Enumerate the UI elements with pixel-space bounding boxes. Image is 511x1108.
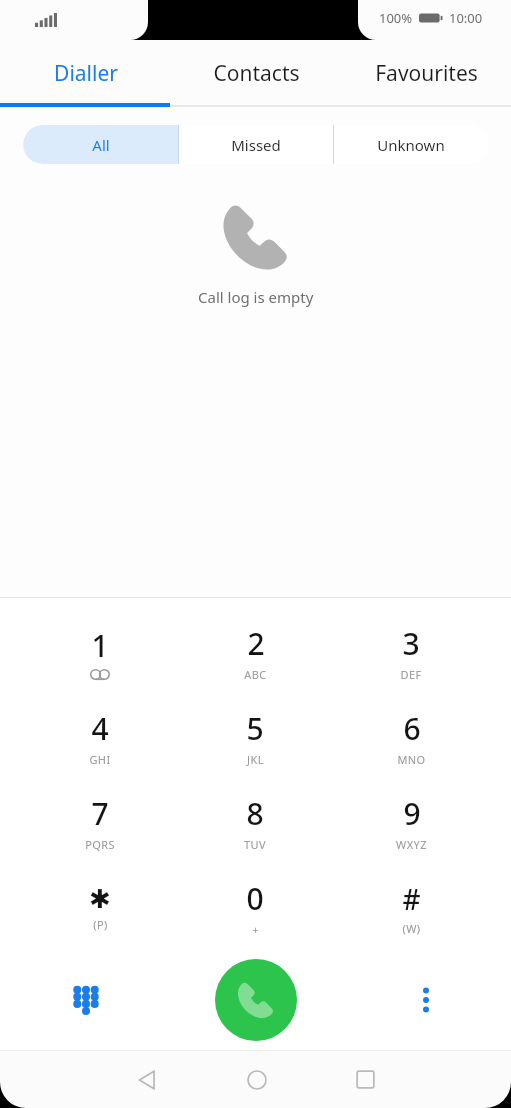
- button[interactable]: Unknown: [334, 125, 488, 164]
- staticText: 6: [403, 708, 421, 749]
- button[interactable]: Favourites: [341, 40, 511, 107]
- button[interactable]: All: [23, 125, 178, 164]
- staticText: GHI: [89, 752, 111, 767]
- button[interactable]: 4: [22, 695, 177, 780]
- staticText: Contacts: [213, 59, 300, 88]
- staticText: TUV: [244, 837, 266, 852]
- staticText: ✱: [89, 884, 111, 914]
- button[interactable]: Contacts: [171, 40, 341, 107]
- staticText: 7: [91, 793, 109, 834]
- staticText: Missed: [231, 135, 281, 155]
- staticText: Dialler: [54, 59, 118, 88]
- staticText: 100%: [379, 9, 413, 27]
- button[interactable]: Home: [202, 1051, 311, 1108]
- staticText: WXYZ: [396, 837, 427, 852]
- staticText: Favourites: [375, 59, 478, 88]
- staticText: (P): [93, 917, 108, 932]
- button[interactable]: 0: [177, 865, 333, 950]
- button[interactable]: 8: [177, 780, 333, 865]
- staticText: 8: [246, 793, 264, 834]
- button[interactable]: 3: [333, 610, 489, 695]
- button[interactable]: Back: [92, 1051, 202, 1108]
- button[interactable]: 6: [333, 695, 489, 780]
- staticText: #: [402, 880, 421, 918]
- button[interactable]: 1: [22, 610, 177, 695]
- button[interactable]: 7: [22, 780, 177, 865]
- staticText: 5: [246, 708, 264, 749]
- staticText: All: [92, 135, 110, 155]
- button[interactable]: 2: [177, 610, 333, 695]
- staticText: PQRS: [85, 837, 115, 852]
- button[interactable]: 9: [333, 780, 489, 865]
- staticText: ABC: [244, 667, 267, 682]
- staticText: Call log is empty: [198, 287, 314, 307]
- staticText: 10:00: [449, 9, 483, 27]
- button[interactable]: 5: [177, 695, 333, 780]
- staticText: MNO: [397, 752, 426, 767]
- staticText: JKL: [247, 752, 264, 767]
- staticText: 4: [91, 708, 109, 749]
- staticText: 1: [91, 625, 109, 666]
- staticText: 0: [246, 878, 264, 919]
- button[interactable]: Missed: [179, 125, 333, 164]
- staticText: (W): [402, 921, 421, 936]
- button[interactable]: Dialler: [0, 40, 171, 107]
- staticText: Unknown: [377, 135, 445, 155]
- button[interactable]: ✱: [22, 865, 177, 950]
- staticText: DEF: [400, 667, 422, 682]
- staticText: +: [252, 922, 259, 937]
- button[interactable]: Show dialpad: [0, 950, 171, 1050]
- staticText: 2: [247, 623, 265, 664]
- staticText: 9: [403, 793, 421, 834]
- button[interactable]: More options: [341, 950, 511, 1050]
- button[interactable]: Recent apps: [311, 1051, 420, 1108]
- button[interactable]: #: [333, 865, 489, 950]
- button[interactable]: Call: [215, 959, 297, 1041]
- staticText: 3: [402, 623, 420, 664]
